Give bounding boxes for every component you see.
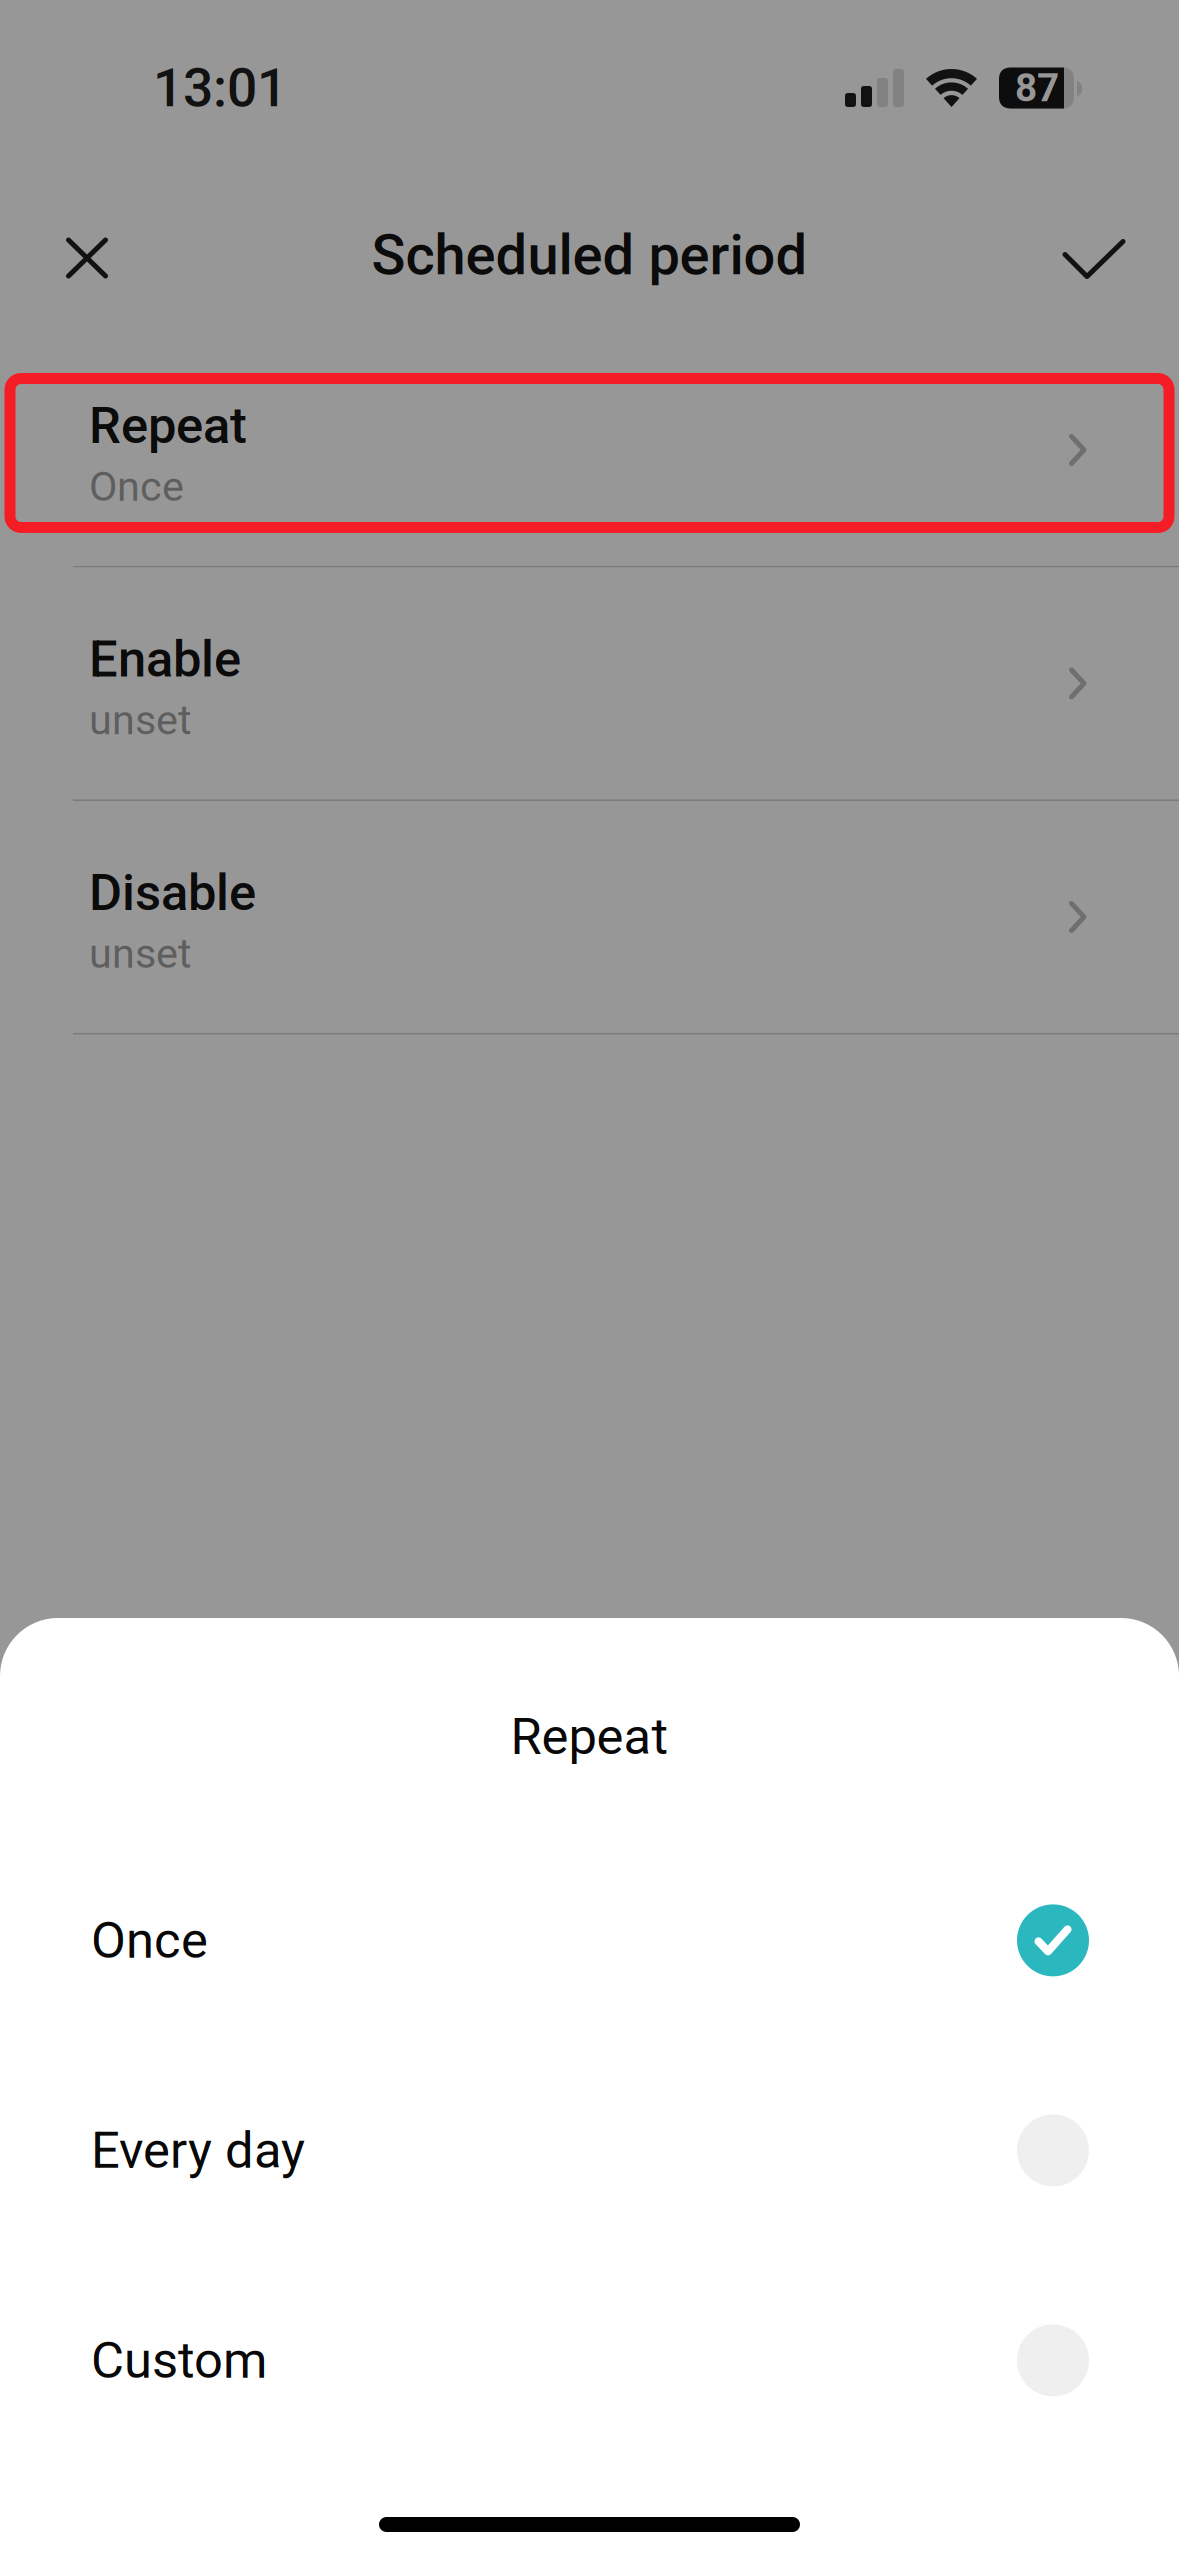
staticText: Scheduled period (371, 222, 807, 288)
staticText: Repeat (89, 396, 247, 455)
staticText: unset (89, 929, 192, 978)
button[interactable]: Every day (0, 2041, 1179, 2251)
button[interactable]: Close (32, 200, 142, 310)
staticText: Repeat (510, 1707, 668, 1766)
staticText: Once (89, 462, 184, 511)
staticText: Custom (91, 2331, 267, 2390)
staticText: Enable (89, 629, 241, 689)
staticText: 13:01 (153, 57, 287, 119)
staticText: 87 (1015, 65, 1059, 111)
button[interactable]: Repeat (0, 334, 1179, 566)
staticText: Disable (89, 863, 256, 922)
button[interactable]: Disable (0, 801, 1179, 1033)
button[interactable]: Enable (0, 567, 1179, 799)
button[interactable]: Save (1039, 200, 1149, 310)
staticText: Once (91, 1911, 208, 1970)
button[interactable]: Once (0, 1831, 1179, 2041)
staticText: Every day (91, 2121, 305, 2180)
staticText: unset (89, 696, 192, 744)
button[interactable]: Custom (0, 2251, 1179, 2461)
